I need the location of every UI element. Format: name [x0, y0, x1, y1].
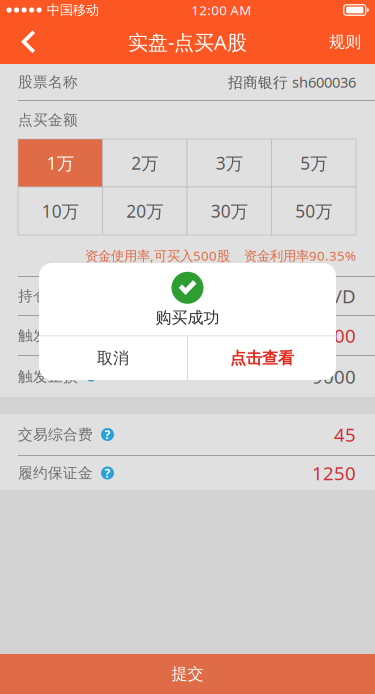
staticText: 股票名称: [18, 73, 78, 91]
button[interactable]: 2万: [102, 139, 187, 187]
staticText: ?: [104, 426, 110, 442]
button[interactable]: 30万: [187, 187, 271, 235]
button[interactable]: 提交: [0, 654, 375, 694]
staticText: 取消: [97, 348, 129, 368]
staticText: 实盘-点买A股: [128, 29, 247, 55]
staticText: 1万: [47, 151, 74, 174]
staticText: 10万: [42, 199, 79, 222]
button[interactable]: 触发止盈: [0, 316, 375, 355]
button[interactable]: 取消: [39, 336, 187, 380]
staticText: 持仓时间: [18, 287, 78, 305]
staticText: 2万: [131, 151, 158, 174]
staticText: 点击查看: [230, 348, 294, 368]
staticText: 50万: [295, 199, 332, 222]
button[interactable]: 1万: [18, 139, 102, 187]
staticText: 中国移动: [47, 2, 99, 18]
staticText: 3万: [216, 151, 243, 174]
staticText: 资金利用率90.35%: [244, 247, 356, 264]
staticText: 点买金额: [18, 111, 78, 129]
button[interactable]: 规则: [315, 20, 375, 64]
button[interactable]: 5万: [271, 139, 356, 187]
staticText: 交易综合费: [18, 425, 93, 443]
staticText: 1250: [312, 461, 356, 485]
staticText: 20万: [126, 199, 163, 222]
staticText: 购买成功: [155, 308, 219, 327]
button[interactable]: 交易综合费: [0, 414, 375, 455]
staticText: 9000: [312, 364, 356, 389]
button[interactable]: 返回: [0, 20, 62, 64]
button[interactable]: 10万: [18, 187, 102, 235]
staticText: 触发止盈: [18, 326, 78, 344]
button[interactable]: 20万: [102, 187, 187, 235]
staticText: ?: [104, 465, 110, 481]
staticText: 履约保证金: [18, 464, 93, 482]
staticText: 45: [334, 422, 356, 447]
staticText: 5万: [300, 151, 327, 174]
button[interactable]: 3万: [187, 139, 271, 187]
staticText: 资金使用率,可买入500股: [85, 247, 230, 264]
button[interactable]: 履约保证金: [0, 456, 375, 490]
button[interactable]: 股票名称: [0, 64, 375, 100]
staticText: 触发止损: [18, 367, 78, 385]
button[interactable]: 持仓时间: [0, 277, 375, 315]
staticText: 招商银行 sh600036: [228, 72, 356, 92]
staticText: 提交: [171, 664, 203, 684]
staticText: 11000: [301, 323, 356, 348]
button[interactable]: 触发止损: [0, 356, 375, 397]
staticText: 规则: [329, 32, 361, 52]
button[interactable]: 点击查看: [188, 336, 336, 380]
staticText: T+N/D: [300, 284, 356, 308]
button[interactable]: 50万: [271, 187, 356, 235]
staticText: 12:00 AM: [191, 1, 251, 19]
staticText: 30万: [211, 199, 248, 222]
